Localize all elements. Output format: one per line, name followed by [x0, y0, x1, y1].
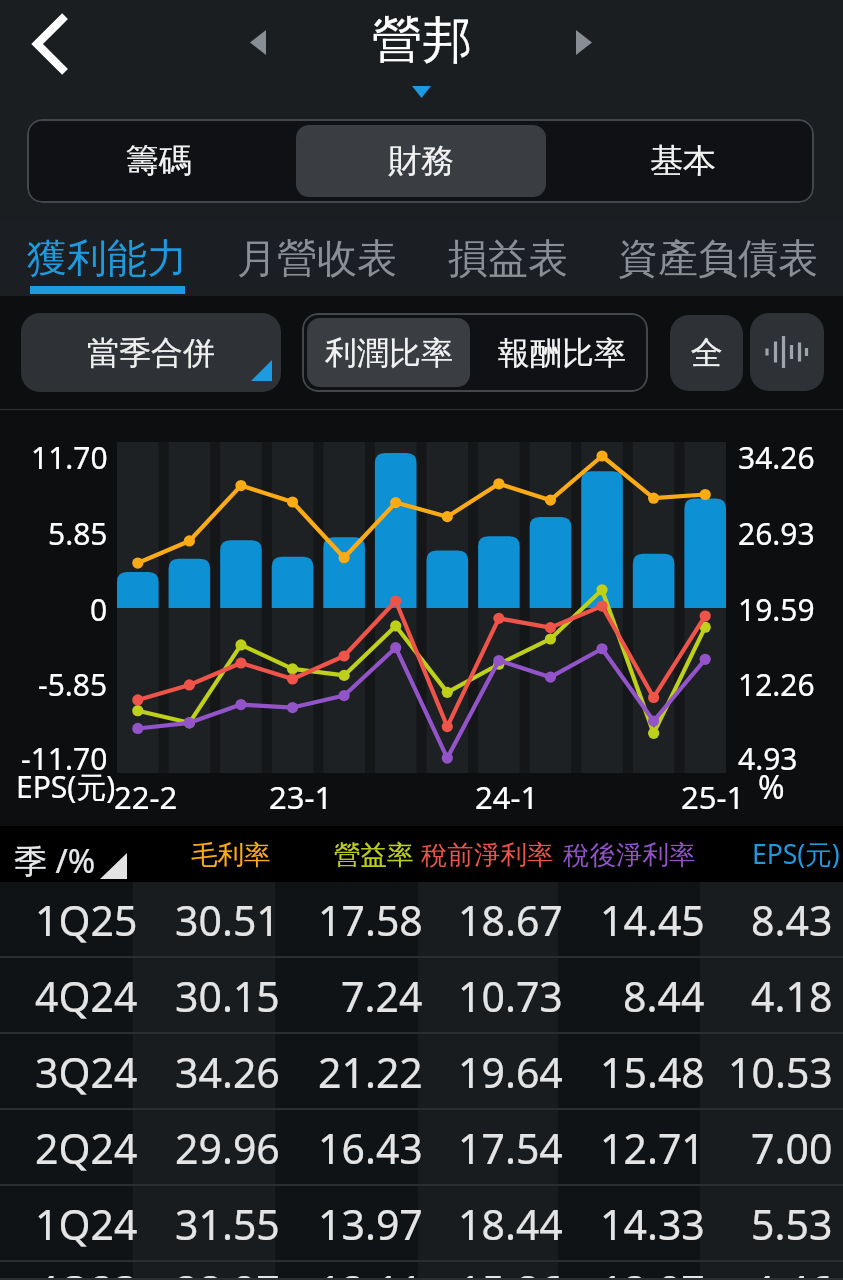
- staticText: 4Q23: [35, 1262, 138, 1280]
- staticText: 營邦: [372, 9, 472, 72]
- button[interactable]: 利潤比率: [307, 318, 470, 387]
- button[interactable]: Next stock: [554, 12, 614, 72]
- staticText: 4.18: [751, 968, 833, 1024]
- staticText: 24-1: [475, 776, 539, 818]
- staticText: 10.73: [458, 968, 563, 1024]
- staticText: 營益率: [334, 838, 414, 871]
- staticText: 17.58: [318, 892, 423, 948]
- staticText: 利潤比率: [325, 333, 453, 373]
- staticText: 8.44: [623, 968, 705, 1024]
- staticText: 3Q24: [35, 1044, 138, 1100]
- staticText: 25-1: [681, 776, 745, 818]
- staticText: 1Q25: [35, 892, 138, 948]
- staticText: 報酬比率: [498, 333, 626, 373]
- staticText: 損益表: [448, 233, 568, 283]
- staticText: 稅前淨利率: [421, 838, 554, 871]
- staticText: -5.85: [38, 664, 108, 705]
- staticText: 7.24: [341, 968, 423, 1024]
- button[interactable]: 基本: [558, 125, 808, 197]
- button[interactable]: 2Q24: [0, 1110, 843, 1186]
- staticText: 全: [691, 333, 723, 373]
- button[interactable]: 報酬比率: [480, 318, 643, 387]
- staticText: 31.55: [175, 1196, 280, 1252]
- staticText: 29.96: [175, 1120, 280, 1176]
- staticText: 19.64: [458, 1044, 563, 1100]
- staticText: EPS(元): [752, 836, 840, 872]
- staticText: 7.00: [751, 1120, 833, 1176]
- staticText: 17.54: [458, 1120, 563, 1176]
- button[interactable]: 獲利能力: [27, 221, 187, 296]
- staticText: 12.71: [600, 1120, 705, 1176]
- button[interactable]: 4Q24: [0, 958, 843, 1034]
- button[interactable]: 1Q25: [0, 882, 843, 958]
- button[interactable]: 籌碼: [33, 125, 284, 197]
- staticText: 15.86: [458, 1262, 563, 1280]
- staticText: 22-2: [114, 776, 178, 818]
- staticText: 8.43: [751, 892, 833, 948]
- staticText: 14.45: [600, 892, 705, 948]
- staticText: 23-1: [269, 776, 333, 818]
- staticText: 28.97: [175, 1262, 280, 1280]
- staticText: 15.48: [600, 1044, 705, 1100]
- staticText: 26.93: [738, 513, 815, 554]
- button[interactable]: 財務: [296, 125, 546, 197]
- staticText: 1Q24: [35, 1196, 138, 1252]
- button[interactable]: 資產負債表: [618, 221, 818, 296]
- staticText: 籌碼: [126, 140, 192, 182]
- staticText: 4.46: [751, 1262, 833, 1280]
- button[interactable]: 1Q24: [0, 1186, 843, 1262]
- staticText: 12.07: [600, 1262, 705, 1280]
- staticText: 19.59: [738, 589, 815, 630]
- staticText: 4.93: [738, 738, 798, 779]
- button[interactable]: Chart indicators: [750, 313, 824, 391]
- staticText: 當季合併: [87, 333, 215, 373]
- staticText: 5.53: [751, 1196, 833, 1252]
- staticText: 12.26: [738, 664, 815, 705]
- staticText: 2Q24: [35, 1120, 138, 1176]
- staticText: %: [758, 765, 785, 809]
- button[interactable]: 全: [670, 315, 743, 391]
- staticText: 12.11: [318, 1262, 423, 1280]
- staticText: 16.43: [318, 1120, 423, 1176]
- staticText: 0: [90, 589, 108, 630]
- button[interactable]: 月營收表: [237, 221, 397, 296]
- button[interactable]: Back: [9, 4, 89, 84]
- staticText: 18.67: [458, 892, 563, 948]
- staticText: 13.97: [318, 1196, 423, 1252]
- staticText: 毛利率: [191, 838, 271, 871]
- staticText: 18.44: [458, 1196, 563, 1252]
- staticText: 30.15: [175, 968, 280, 1024]
- staticText: 季 /%: [14, 838, 96, 883]
- button[interactable]: 當季合併: [21, 313, 281, 392]
- staticText: 基本: [650, 140, 716, 182]
- staticText: EPS(元): [16, 766, 116, 807]
- staticText: 月營收表: [237, 233, 397, 283]
- staticText: 資產負債表: [618, 233, 818, 283]
- button[interactable]: Previous stock: [228, 12, 288, 72]
- staticText: 5.85: [48, 513, 108, 554]
- button[interactable]: 4Q23: [0, 1262, 843, 1280]
- staticText: 34.26: [738, 437, 815, 478]
- button[interactable]: 3Q24: [0, 1034, 843, 1110]
- staticText: 14.33: [600, 1196, 705, 1252]
- staticText: 獲利能力: [27, 233, 187, 283]
- staticText: 10.53: [728, 1044, 833, 1100]
- staticText: 11.70: [31, 437, 108, 478]
- staticText: 34.26: [175, 1044, 280, 1100]
- staticText: 稅後淨利率: [563, 838, 696, 871]
- staticText: -11.70: [21, 738, 108, 779]
- staticText: 30.51: [175, 892, 280, 948]
- staticText: 4Q24: [35, 968, 138, 1024]
- button[interactable]: 損益表: [448, 221, 568, 296]
- staticText: 財務: [388, 140, 454, 182]
- staticText: 21.22: [318, 1044, 423, 1100]
